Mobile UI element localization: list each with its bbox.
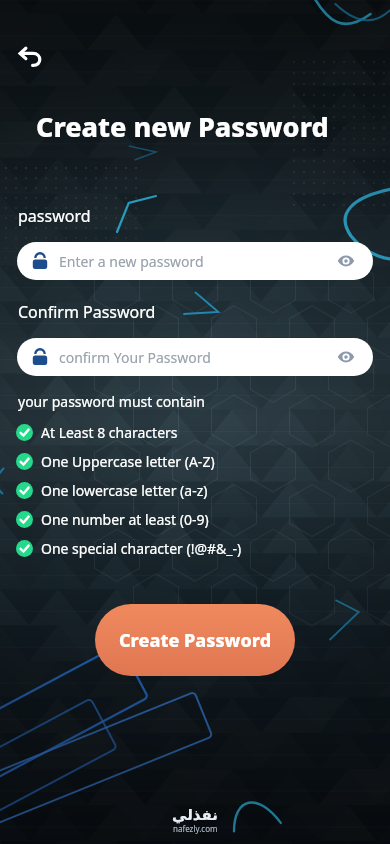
button[interactable]: Show password [333, 344, 359, 370]
button[interactable]: Back [8, 34, 52, 78]
staticText: One special character (!@#&_-) [41, 539, 242, 558]
staticText: نفذلي [172, 806, 218, 823]
button[interactable]: Show password [333, 248, 359, 274]
staticText: confirm Your Password [59, 348, 333, 367]
button[interactable]: One special character (!@#&_-) [16, 536, 242, 560]
staticText: One number at least (0-9) [41, 510, 209, 529]
button[interactable]: One Uppercase letter (A-Z) [16, 449, 215, 473]
staticText: One lowercase letter (a-z) [41, 481, 208, 500]
button[interactable]: One lowercase letter (a-z) [16, 478, 208, 502]
staticText: One Uppercase letter (A-Z) [41, 452, 215, 471]
button[interactable]: confirm Your Password [17, 338, 373, 376]
staticText: Create Password [119, 628, 272, 653]
button[interactable]: Enter a new password [17, 242, 373, 280]
staticText: At Least 8 characters [41, 423, 178, 442]
staticText: Confirm Password [18, 301, 156, 323]
staticText: Create new Password [36, 108, 329, 145]
staticText: password [18, 205, 91, 227]
staticText: nafezly.com [173, 823, 218, 834]
button[interactable]: Create Password [95, 604, 295, 676]
staticText: your password must contain [18, 392, 205, 411]
staticText: Enter a new password [59, 252, 333, 271]
button[interactable]: At Least 8 characters [16, 420, 178, 444]
button[interactable]: One number at least (0-9) [16, 507, 209, 531]
